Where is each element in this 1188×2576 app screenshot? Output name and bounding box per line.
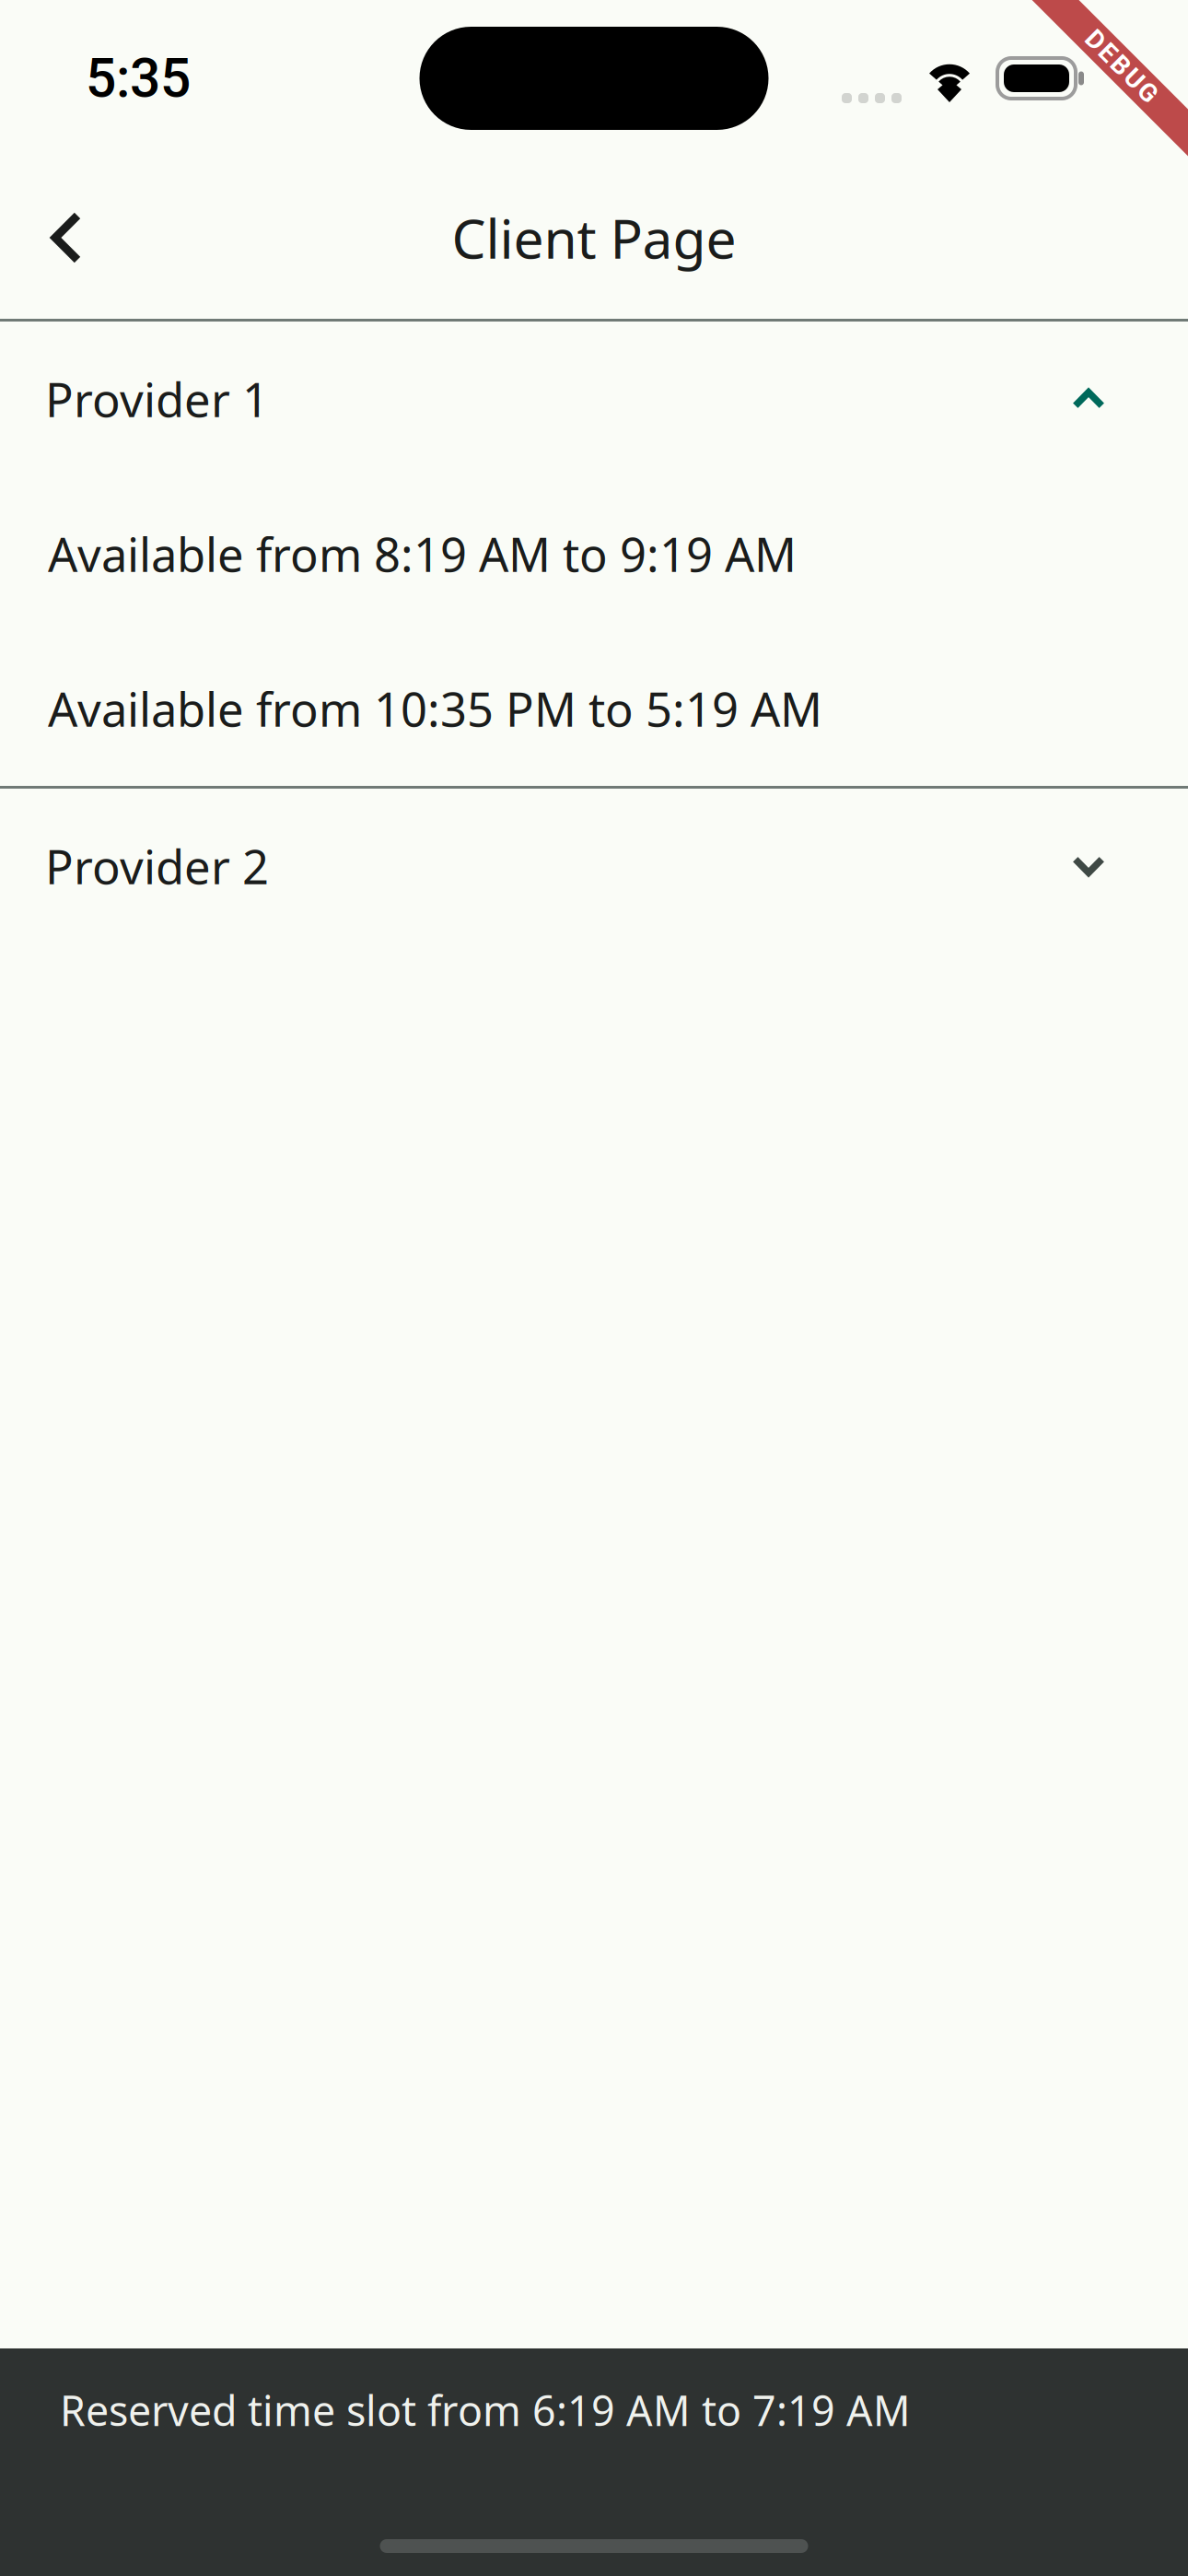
staticText: Client Page xyxy=(452,201,736,274)
staticText: 5:35 xyxy=(86,47,191,110)
button[interactable]: Provider 2 xyxy=(0,789,1188,943)
button[interactable]: Provider 1 xyxy=(0,322,1188,476)
staticText: Provider 1 xyxy=(45,367,269,431)
staticText: Provider 2 xyxy=(45,834,269,898)
button[interactable]: Available from 8:19 AM to 9:19 AM xyxy=(0,476,1188,631)
staticText: Reserved time slot from 6:19 AM to 7:19 … xyxy=(60,2382,911,2438)
staticText: DEBUG xyxy=(1076,51,1167,81)
button[interactable]: Available from 10:35 PM to 5:19 AM xyxy=(0,631,1188,786)
staticText: Available from 8:19 AM to 9:19 AM xyxy=(48,522,797,585)
staticText: Available from 10:35 PM to 5:19 AM xyxy=(48,677,822,740)
button[interactable]: Back xyxy=(0,171,133,304)
